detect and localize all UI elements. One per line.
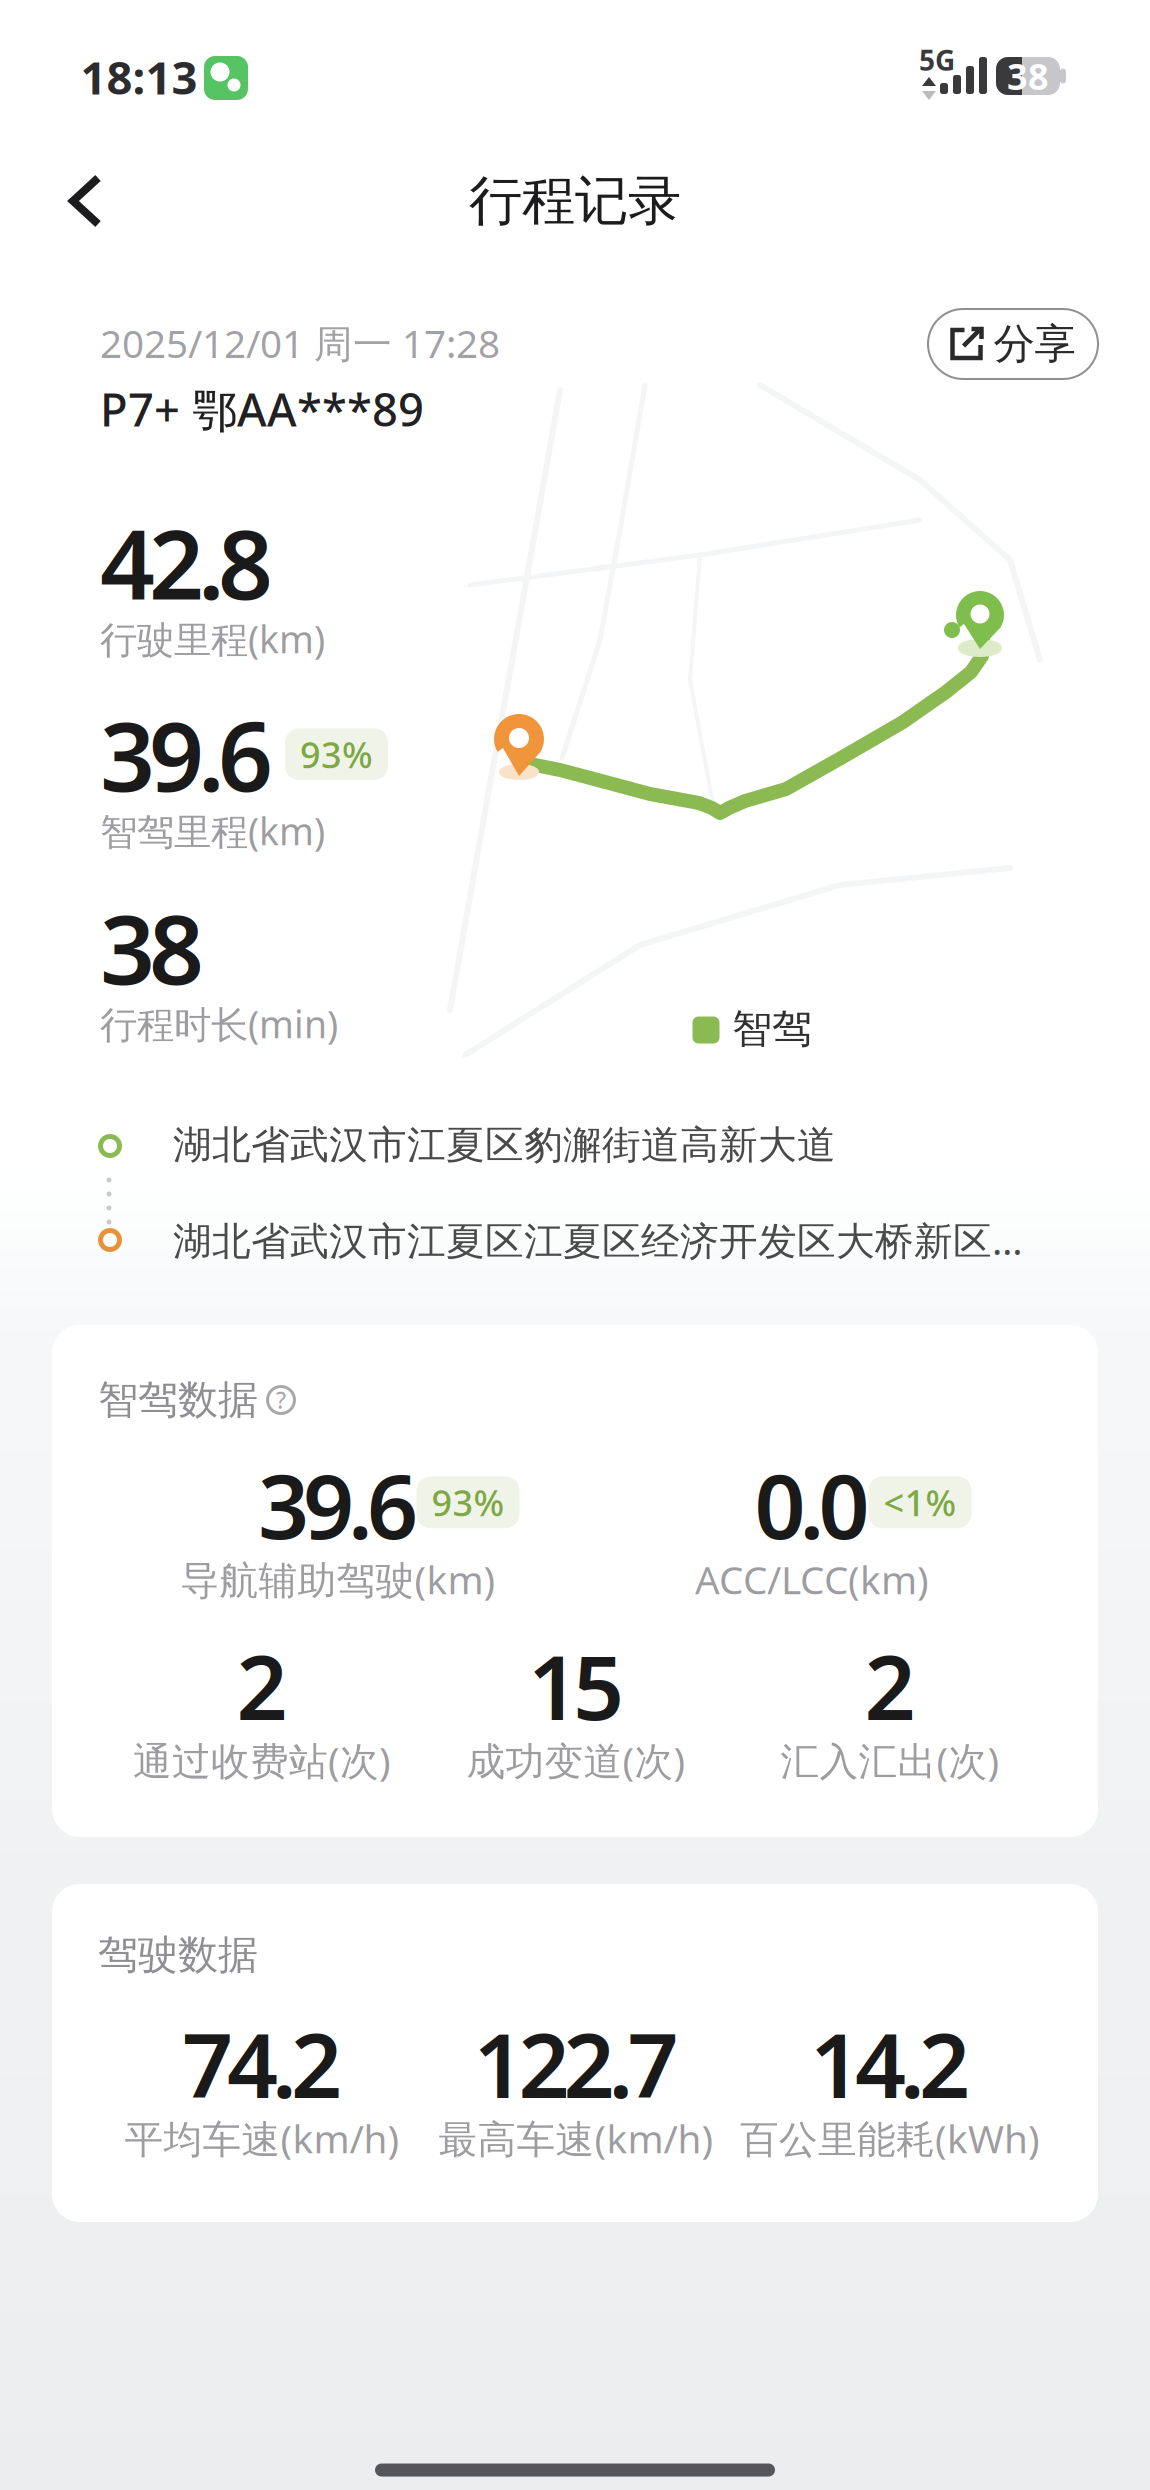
- staticText: 42.8: [100, 498, 273, 626]
- staticText: 2: [236, 1626, 287, 1745]
- button[interactable]: 分享: [927, 308, 1099, 380]
- staticText: 成功变道(次): [466, 1735, 685, 1786]
- staticText: 百公里能耗(kWh): [740, 2113, 1040, 2164]
- staticText: 智驾里程(km): [100, 806, 325, 856]
- staticText: ?: [276, 1385, 286, 1415]
- staticText: 最高车速(km/h): [438, 2113, 713, 2164]
- button[interactable]: [55, 171, 115, 231]
- staticText: 通过收费站(次): [133, 1735, 391, 1786]
- staticText: 74.2: [182, 2004, 342, 2123]
- staticText: 2025/12/01 周一 17:28: [100, 317, 500, 369]
- staticText: ACC/LCC(km): [695, 1554, 929, 1605]
- staticText: 平均车速(km/h): [124, 2113, 399, 2164]
- staticText: 分享: [993, 319, 1075, 369]
- staticText: 智驾数据: [98, 1375, 258, 1424]
- staticText: 39.6: [258, 1445, 418, 1564]
- staticText: 智驾: [732, 1004, 812, 1053]
- staticText: 汇入汇出(次): [780, 1735, 999, 1786]
- staticText: 5G: [919, 41, 955, 79]
- staticText: 15: [528, 1626, 624, 1745]
- staticText: 38: [1007, 52, 1049, 100]
- staticText: 0.0: [754, 1445, 869, 1564]
- staticText: 122.7: [473, 2004, 678, 2123]
- staticText: 2: [864, 1626, 915, 1745]
- staticText: 93%: [431, 1478, 504, 1526]
- staticText: 14.2: [810, 2004, 970, 2123]
- staticText: <1%: [883, 1478, 956, 1526]
- staticText: 导航辅助驾驶(km): [180, 1554, 495, 1605]
- staticText: 39.6: [100, 690, 273, 818]
- staticText: 93%: [300, 730, 373, 778]
- staticText: P7+ 鄂AA***89: [100, 379, 424, 439]
- staticText: 行程记录: [469, 168, 681, 234]
- staticText: 18:13: [80, 47, 197, 107]
- staticText: 38: [100, 883, 204, 1011]
- staticText: 行驶里程(km): [100, 614, 325, 664]
- staticText: 湖北省武汉市江夏区豹澥街道高新大道: [173, 1121, 836, 1169]
- staticText: 行程时长(min): [100, 999, 338, 1049]
- staticText: 驾驶数据: [98, 1930, 258, 1979]
- staticText: 湖北省武汉市江夏区江夏区经济开发区大桥新区…: [173, 1214, 1023, 1266]
- button[interactable]: ?: [266, 1385, 296, 1415]
